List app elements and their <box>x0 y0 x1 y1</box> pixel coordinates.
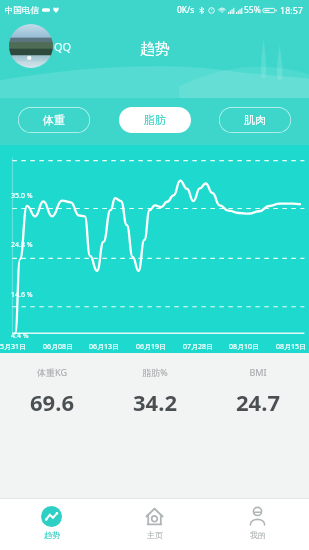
staticText: 5月31日 <box>0 342 27 352</box>
staticText: 脂肪% <box>142 366 168 378</box>
staticText: 07月28日 <box>183 342 214 352</box>
staticText: 06月13日 <box>89 342 120 352</box>
staticText: BMI <box>249 366 267 378</box>
button[interactable]: Home <box>103 499 206 550</box>
staticText: 体重 <box>43 113 65 127</box>
button[interactable]: 体重KG <box>0 366 103 417</box>
button[interactable]: 脂肪% <box>103 366 206 417</box>
staticText: QQ <box>54 39 72 54</box>
staticText: 08月15日 <box>276 342 307 352</box>
staticText: 06月08日 <box>43 342 74 352</box>
staticText: 0K/s <box>177 4 195 16</box>
staticText: 脂肪 <box>144 113 166 127</box>
staticText: 中国电信 <box>5 5 39 16</box>
button[interactable]: Trends <box>0 499 103 550</box>
staticText: 34.2 <box>133 387 177 417</box>
staticText: 趋势 <box>140 40 170 59</box>
staticText: 55% <box>244 4 261 16</box>
staticText: 趋势 <box>44 530 60 540</box>
staticText: 24.7 <box>236 387 280 417</box>
staticText: 35.0 % <box>11 191 33 201</box>
button[interactable]: Profile avatar <box>7 22 74 70</box>
button[interactable]: Profile <box>206 499 309 550</box>
button[interactable]: 脂肪 <box>119 107 191 133</box>
staticText: 18:57 <box>280 4 304 16</box>
other: Profile avatar <box>9 24 53 68</box>
button[interactable]: 肌肉 <box>219 107 291 133</box>
other: Home <box>144 506 165 527</box>
staticText: 4.4 % <box>11 331 29 341</box>
staticText: 69.6 <box>30 387 74 417</box>
staticText: 肌肉 <box>244 113 266 127</box>
staticText: 08月10日 <box>229 342 260 352</box>
other: Profile <box>247 506 268 527</box>
staticText: 主页 <box>147 530 163 540</box>
other: Trends <box>41 506 62 527</box>
staticText: 14.6 % <box>11 290 33 300</box>
button[interactable]: BMI <box>206 366 309 417</box>
staticText: 我的 <box>250 530 266 540</box>
staticText: 24.8 % <box>11 240 33 250</box>
button[interactable]: 体重 <box>18 107 90 133</box>
staticText: 06月19日 <box>136 342 167 352</box>
staticText: 体重KG <box>37 366 67 378</box>
